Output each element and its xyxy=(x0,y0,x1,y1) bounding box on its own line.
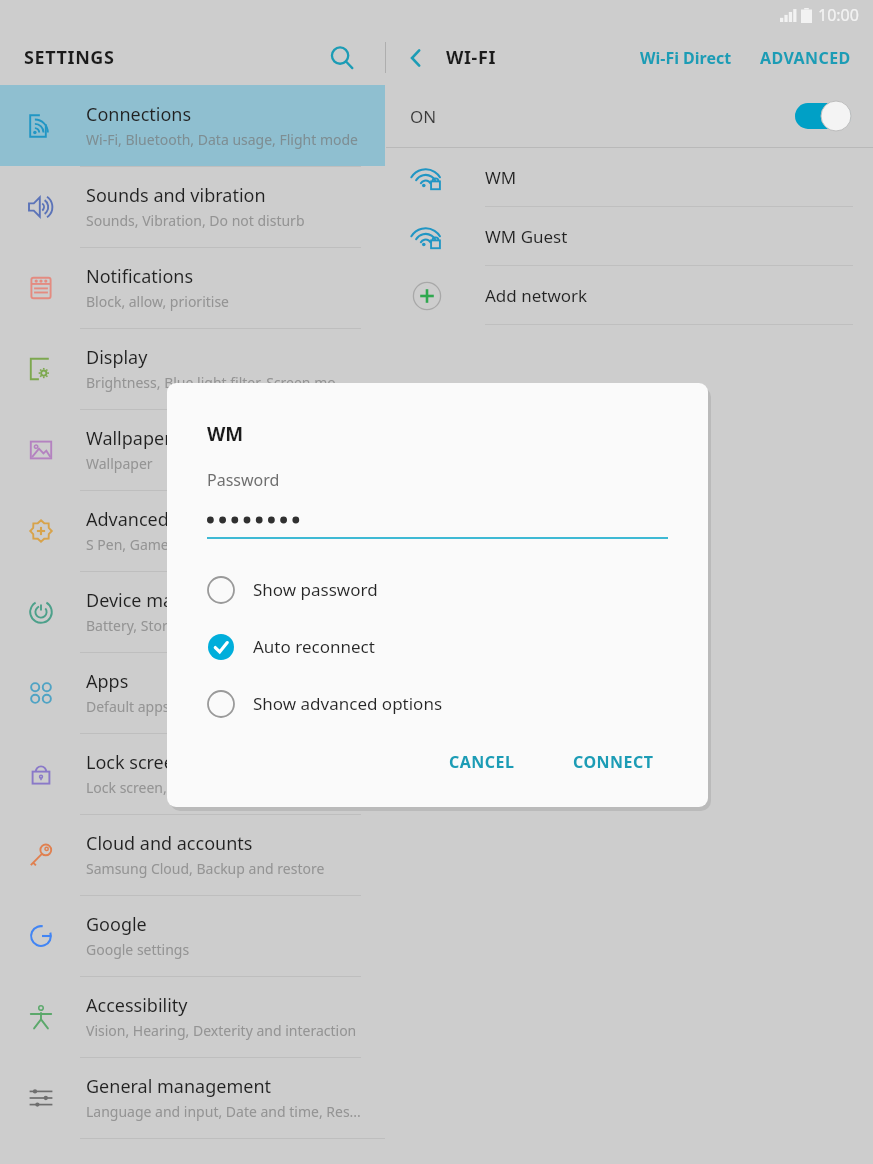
button[interactable]: Notifications xyxy=(0,247,385,328)
staticText: WI-FI xyxy=(446,45,497,70)
button[interactable]: Accessibility xyxy=(0,976,385,1057)
staticText: ADVANCED xyxy=(760,47,851,69)
button[interactable]: WM xyxy=(386,148,873,207)
staticText: WM xyxy=(207,421,244,447)
button[interactable]: Lock screen and security xyxy=(0,733,385,814)
staticText: Google xyxy=(86,912,147,937)
staticText: Brightness, Blue light filter, Screen mo… xyxy=(86,373,347,392)
staticText: Show password xyxy=(253,578,378,601)
staticText: CONNECT xyxy=(573,751,654,773)
button[interactable]: CANCEL xyxy=(435,741,529,783)
staticText: Google settings xyxy=(86,940,190,959)
button[interactable]: Add network xyxy=(386,266,873,325)
staticText: Samsung Cloud, Backup and restore xyxy=(86,859,325,878)
staticText: Connections xyxy=(86,102,192,127)
staticText: Wi-Fi, Bluetooth, Data usage, Flight mod… xyxy=(86,130,359,149)
staticText: Add network xyxy=(485,284,588,307)
button[interactable]: Show password xyxy=(207,561,668,618)
staticText: Vision, Hearing, Dexterity and interacti… xyxy=(86,1021,357,1040)
staticText: Password xyxy=(207,469,280,491)
staticText: SETTINGS xyxy=(24,45,115,70)
staticText: CANCEL xyxy=(449,751,515,773)
staticText: ON xyxy=(410,105,437,128)
button[interactable]: Search xyxy=(321,37,363,79)
button[interactable]: Display xyxy=(0,328,385,409)
staticText: Device maintenance xyxy=(86,588,257,613)
staticText: Sounds, Vibration, Do not disturb xyxy=(86,211,305,230)
button[interactable]: ADVANCED xyxy=(752,39,859,77)
button[interactable]: WM Guest xyxy=(386,207,873,266)
staticText: Apps xyxy=(86,669,129,694)
staticText: Auto reconnect xyxy=(253,635,375,658)
button[interactable]: Wallpaper xyxy=(0,409,385,490)
staticText: Cloud and accounts xyxy=(86,831,253,856)
button[interactable]: Connections xyxy=(0,85,385,166)
staticText: 10:00 xyxy=(818,4,859,26)
staticText: General management xyxy=(86,1074,272,1099)
button[interactable]: ON xyxy=(386,85,873,147)
button[interactable]: Apps xyxy=(0,652,385,733)
staticText: Sounds and vibration xyxy=(86,183,266,208)
staticText: Wallpaper xyxy=(86,426,172,451)
button[interactable]: Sounds and vibration xyxy=(0,166,385,247)
button[interactable]: Back xyxy=(394,36,438,80)
button[interactable]: Cloud and accounts xyxy=(0,814,385,895)
staticText: Lock screen and security xyxy=(86,750,293,775)
staticText: Wi-Fi Direct xyxy=(640,47,732,69)
staticText: Display xyxy=(86,345,148,370)
staticText: Notifications xyxy=(86,264,194,289)
staticText: WM xyxy=(485,166,517,189)
staticText: Advanced features xyxy=(86,507,244,532)
staticText: Lock screen, Fingerprints, Find My Mo... xyxy=(86,778,346,797)
button[interactable]: General management xyxy=(0,1057,385,1138)
staticText: Language and input, Date and time, Res..… xyxy=(86,1102,361,1121)
staticText: Battery, Storage, Memory xyxy=(86,616,255,635)
staticText: WM Guest xyxy=(485,225,568,248)
button[interactable]: Auto reconnect xyxy=(207,618,668,675)
button[interactable]: Google xyxy=(0,895,385,976)
button[interactable]: Advanced features xyxy=(0,490,385,571)
staticText: S Pen, Game Launcher, One-handed m... xyxy=(86,535,350,554)
staticText: Default apps, Application manager xyxy=(86,697,315,716)
button[interactable]: Device maintenance xyxy=(0,571,385,652)
staticText: Wallpaper xyxy=(86,454,153,473)
button[interactable]: CONNECT xyxy=(559,741,668,783)
button[interactable]: Show advanced options xyxy=(207,675,668,732)
staticText: Block, allow, prioritise xyxy=(86,292,230,311)
staticText: Show advanced options xyxy=(253,692,443,715)
staticText: Accessibility xyxy=(86,993,188,1018)
button[interactable]: Wi-Fi Direct xyxy=(632,39,740,77)
